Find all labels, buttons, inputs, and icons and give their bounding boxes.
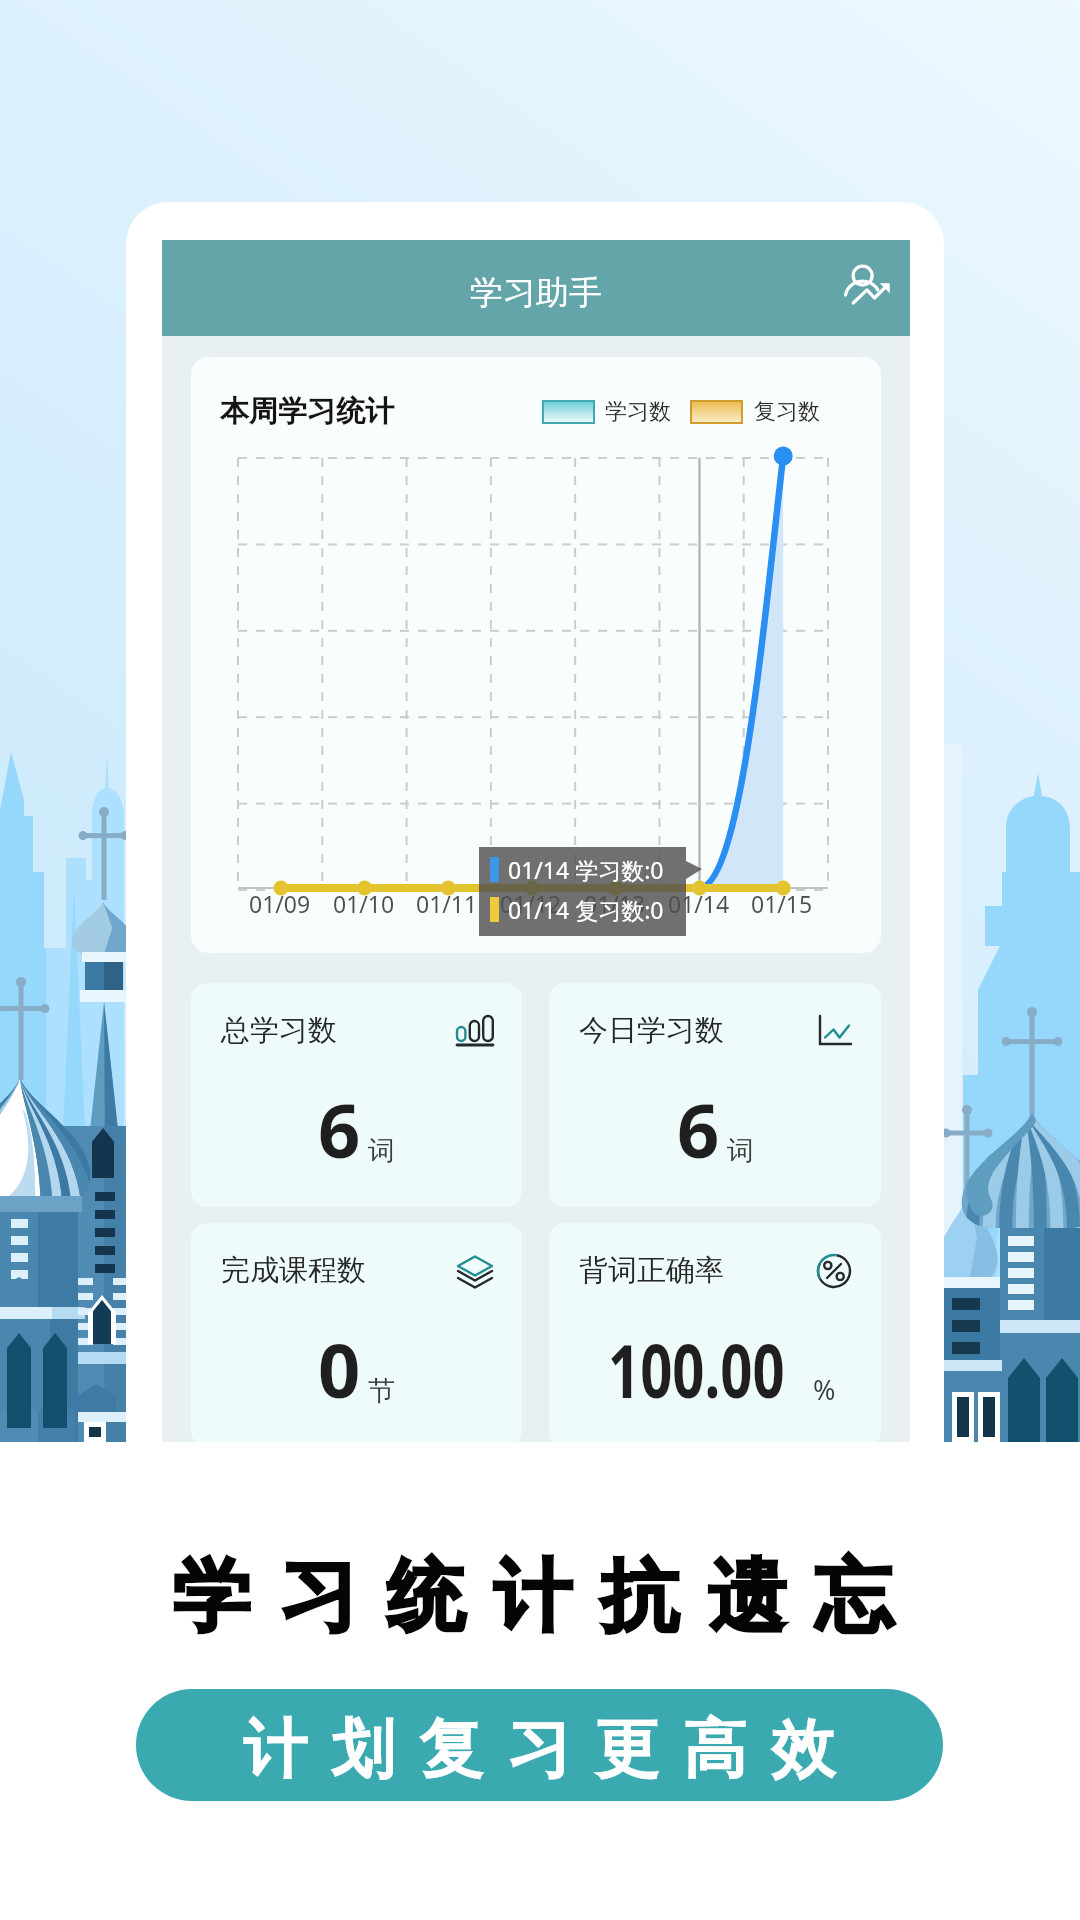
staticText: 01/15: [751, 888, 813, 919]
button[interactable]: 背词正确率: [549, 1223, 881, 1447]
staticText: 01/14 复习数:0: [508, 894, 664, 925]
button[interactable]: 学习报告: [838, 259, 896, 317]
staticText: 学习数: [605, 398, 671, 426]
button[interactable]: 本周学习统计: [191, 357, 881, 953]
button[interactable]: 总学习数: [191, 983, 522, 1207]
staticText: 01/13: [584, 888, 646, 919]
staticText: 0: [318, 1319, 361, 1420]
staticText: 完成课程数: [221, 1252, 366, 1289]
staticText: 词: [368, 1134, 395, 1168]
staticText: 01/14 学习数:0: [508, 854, 664, 885]
staticText: 01/09: [249, 888, 311, 919]
staticText: 01/12: [500, 888, 562, 919]
staticText: 复习数: [754, 398, 820, 426]
staticText: 本周学习统计: [220, 393, 394, 430]
staticText: 6: [677, 1079, 720, 1180]
staticText: 6: [318, 1079, 361, 1180]
staticText: %: [813, 1371, 836, 1408]
staticText: 01/11: [416, 888, 478, 919]
staticText: 词: [727, 1134, 754, 1168]
button[interactable]: 计划复习更高效: [136, 1689, 943, 1801]
staticText: 01/10: [333, 888, 395, 919]
staticText: 总学习数: [221, 1012, 337, 1049]
staticText: 今日学习数: [579, 1012, 724, 1049]
staticText: 计划复习更高效: [231, 1709, 847, 1790]
staticText: 学习统计抗遗忘: [158, 1548, 907, 1646]
staticText: 01/14: [668, 888, 730, 919]
staticText: 学习助手: [470, 272, 602, 314]
button[interactable]: 完成课程数: [191, 1223, 522, 1447]
button[interactable]: 今日学习数: [549, 983, 881, 1207]
staticText: 节: [368, 1374, 395, 1408]
staticText: 背词正确率: [579, 1252, 724, 1289]
staticText: 100.00: [608, 1319, 785, 1420]
